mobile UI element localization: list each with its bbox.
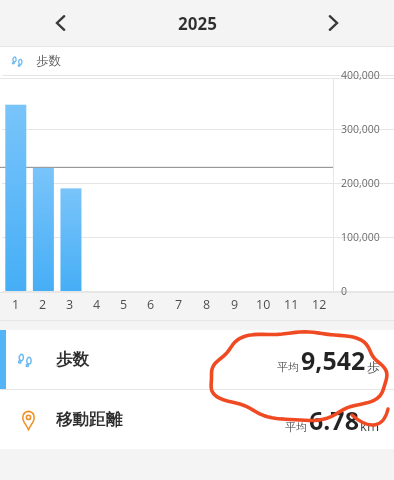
- staticText: 6.78: [309, 403, 359, 437]
- staticText: 歩数: [56, 349, 89, 370]
- staticText: 200,000: [341, 176, 380, 190]
- staticText: 2: [39, 296, 47, 313]
- staticText: km: [360, 417, 380, 435]
- staticText: 300,000: [341, 122, 380, 136]
- staticText: 2025: [178, 12, 217, 35]
- staticText: 10: [256, 296, 271, 313]
- staticText: 6: [147, 296, 155, 313]
- staticText: 歩: [367, 359, 380, 375]
- staticText: 12: [312, 296, 327, 313]
- staticText: 移動距離: [56, 409, 122, 430]
- staticText: 9,542: [301, 343, 366, 377]
- staticText: 11: [284, 296, 299, 313]
- staticText: 0: [341, 284, 348, 298]
- staticText: 400,000: [341, 68, 380, 82]
- staticText: 3: [66, 296, 74, 313]
- button[interactable]: 歩数: [0, 46, 394, 321]
- button[interactable]: Previous year: [44, 6, 78, 40]
- staticText: 平均: [285, 420, 307, 434]
- button[interactable]: Next year: [316, 6, 350, 40]
- button[interactable]: 歩数: [0, 330, 394, 389]
- staticText: 1: [12, 296, 20, 313]
- staticText: 100,000: [341, 230, 380, 244]
- staticText: 7: [175, 296, 183, 313]
- button[interactable]: 移動距離: [0, 390, 394, 449]
- staticText: 歩数: [36, 53, 61, 69]
- staticText: 平均: [277, 360, 299, 374]
- staticText: 9: [231, 296, 239, 313]
- staticText: 4: [93, 296, 101, 313]
- staticText: 8: [203, 296, 211, 313]
- staticText: 5: [120, 296, 128, 313]
